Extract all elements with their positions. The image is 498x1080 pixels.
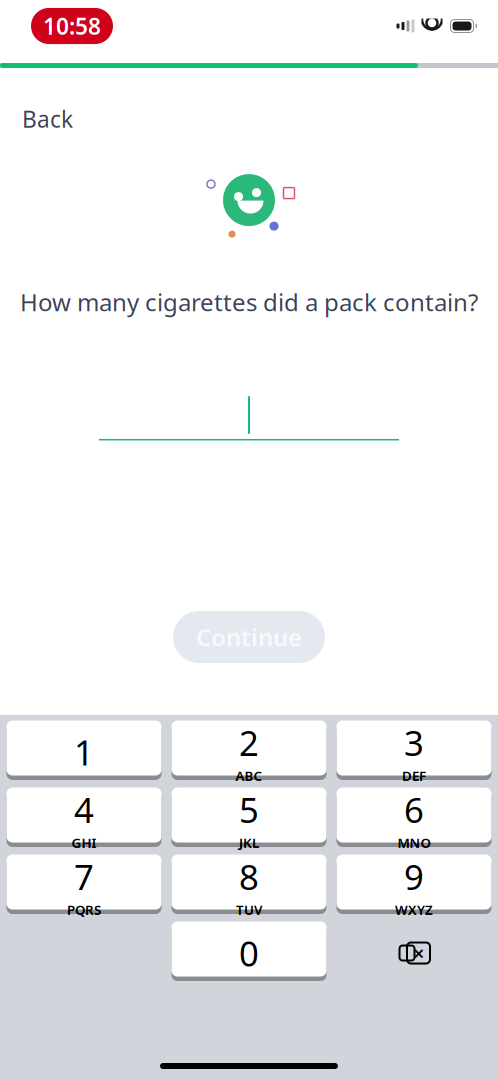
staticText: GHI — [71, 834, 96, 851]
button[interactable]: 2 — [171, 724, 326, 780]
button[interactable]: 7 — [6, 858, 161, 914]
staticText: 0 — [239, 930, 259, 976]
staticText: 0 — [239, 930, 259, 976]
staticText: TUV — [236, 901, 262, 918]
staticText: 8 — [239, 854, 259, 900]
staticText: 1 — [74, 729, 94, 775]
button[interactable]: Back — [0, 92, 95, 146]
staticText: 3 — [404, 720, 424, 766]
staticText: 7 — [74, 854, 94, 900]
staticText: × — [413, 940, 424, 966]
button[interactable]: 9 — [336, 858, 491, 914]
staticText: 5 — [239, 787, 259, 833]
button[interactable]: 6 — [336, 791, 491, 847]
staticText: 5 — [239, 787, 259, 833]
button[interactable]: Delete — [336, 925, 491, 981]
staticText: 2 — [239, 720, 259, 766]
staticText: Continue — [196, 621, 302, 653]
staticText: 4 — [74, 787, 94, 833]
button[interactable]: 3 — [336, 724, 491, 780]
button[interactable]: 0 — [171, 925, 326, 981]
staticText: JKL — [239, 834, 259, 851]
staticText: GHI — [71, 834, 96, 851]
staticText: 4 — [74, 787, 94, 833]
staticText: ABC — [235, 767, 262, 784]
staticText: MNO — [397, 834, 430, 851]
staticText: MNO — [397, 834, 430, 851]
staticText: WXYZ — [395, 901, 433, 918]
staticText: 2 — [239, 720, 259, 766]
staticText: 9 — [404, 854, 424, 900]
staticText: Back — [22, 104, 73, 134]
staticText: PQRS — [67, 901, 101, 918]
button[interactable]: 8 — [171, 858, 326, 914]
button[interactable]: 1 — [6, 724, 161, 780]
staticText: JKL — [239, 834, 259, 851]
staticText: DEF — [402, 767, 426, 784]
staticText: 6 — [404, 787, 424, 833]
button[interactable]: 5 — [171, 791, 326, 847]
staticText: 3 — [404, 720, 424, 766]
staticText: ABC — [235, 767, 262, 784]
staticText: WXYZ — [395, 901, 433, 918]
staticText: 1 — [74, 729, 94, 775]
staticText: 9 — [404, 854, 424, 900]
staticText: PQRS — [67, 901, 101, 918]
staticText: 6 — [404, 787, 424, 833]
staticText: 8 — [239, 854, 259, 900]
staticText: TUV — [236, 901, 262, 918]
staticText: DEF — [402, 767, 426, 784]
staticText: How many cigarettes did a pack contain? — [20, 286, 478, 318]
button[interactable]: Continue — [173, 611, 325, 663]
button[interactable]: 4 — [6, 791, 161, 847]
staticText: 10:58 — [43, 11, 101, 41]
staticText: 7 — [74, 854, 94, 900]
